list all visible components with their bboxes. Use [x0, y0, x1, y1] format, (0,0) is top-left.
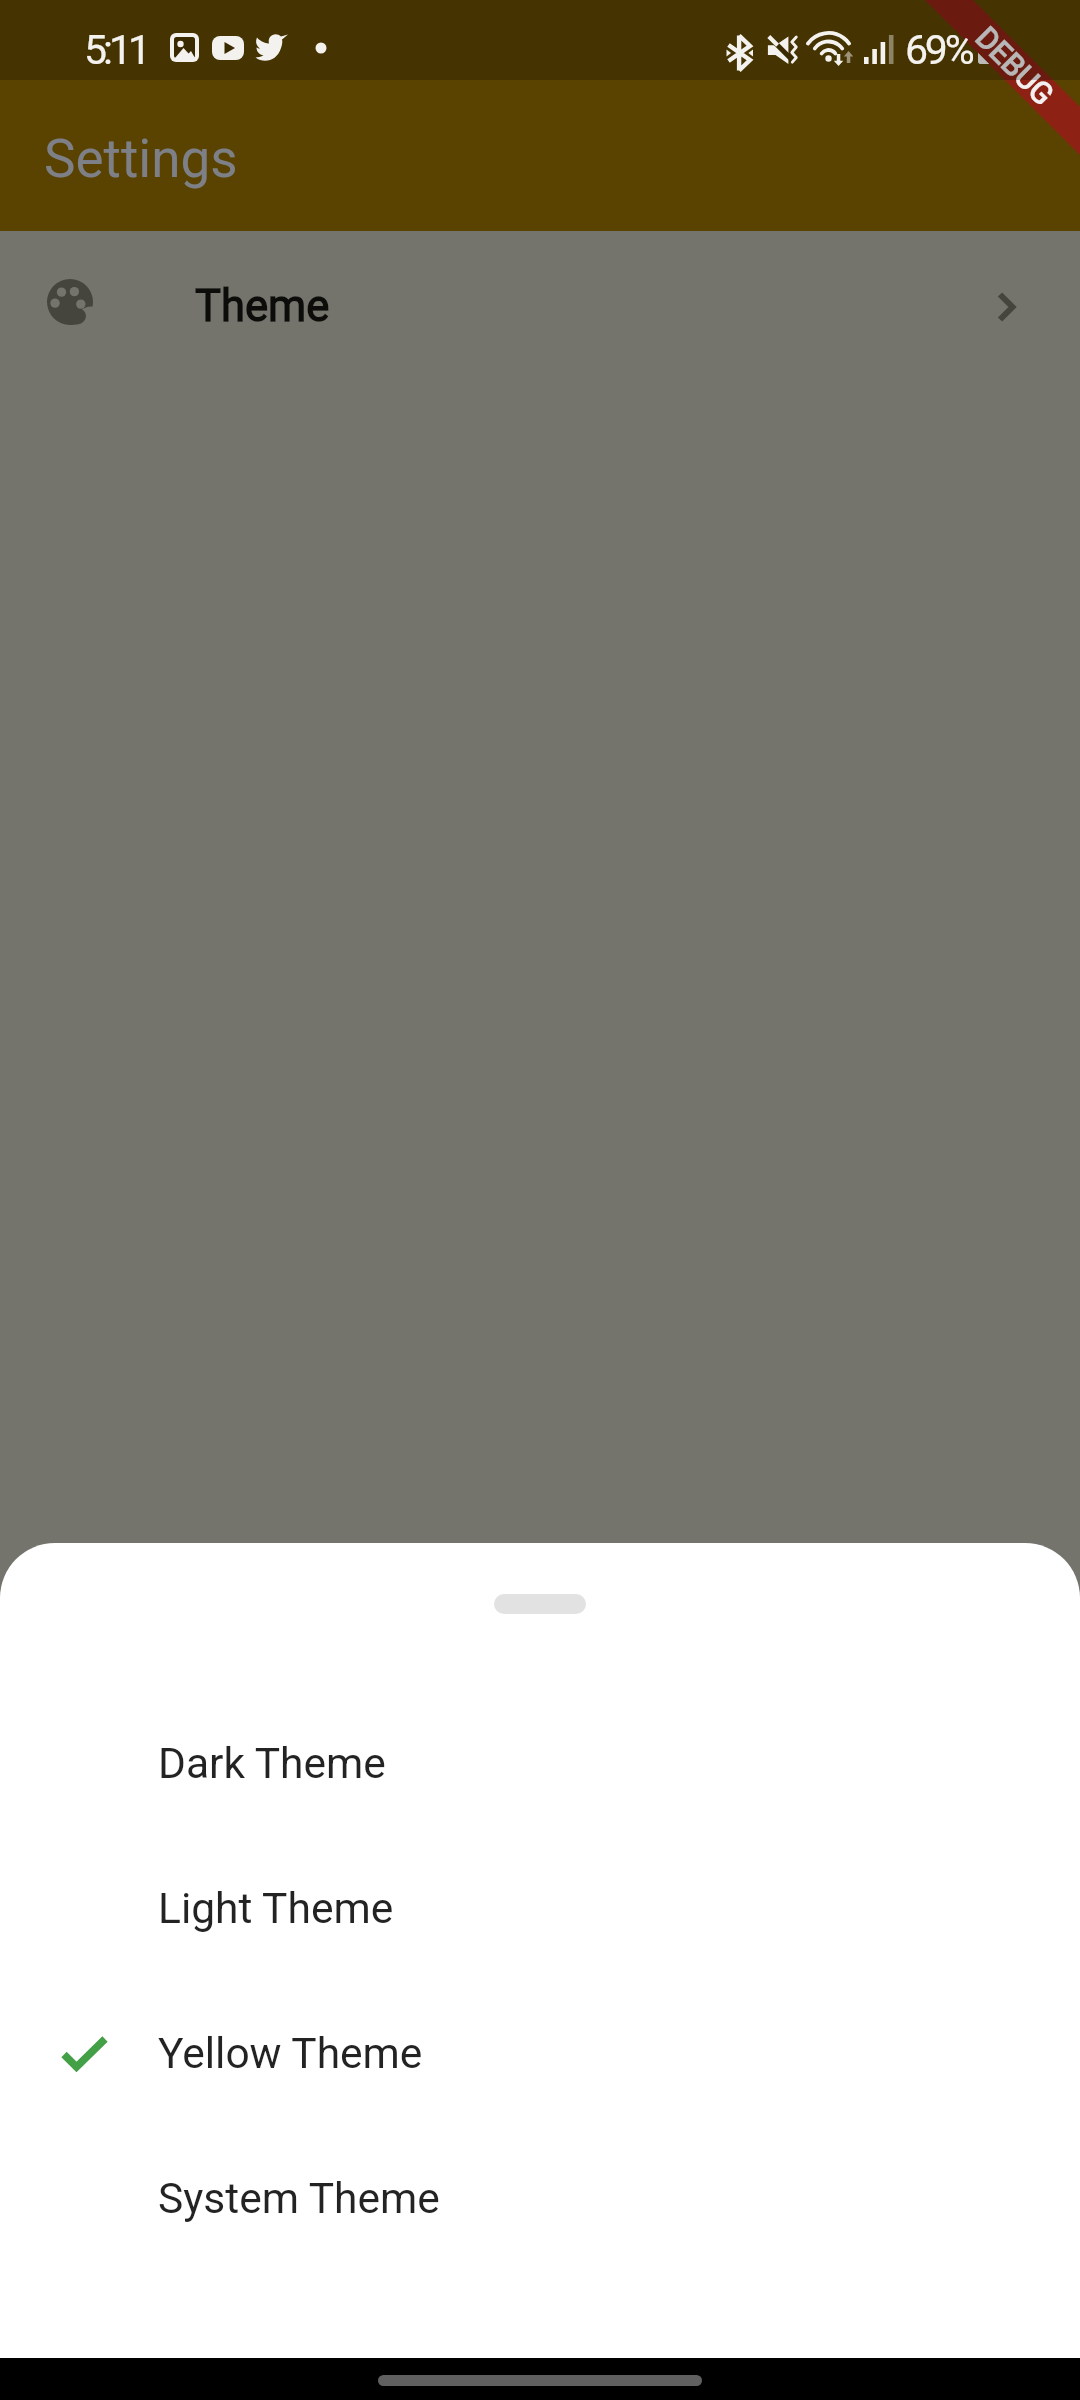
- button[interactable]: System Theme: [0, 2101, 1080, 2246]
- staticText: Dark Theme: [158, 1739, 386, 1789]
- staticText: 69%: [905, 26, 972, 74]
- staticText: 5:11: [84, 26, 148, 74]
- staticText: Yellow Theme: [158, 2029, 423, 2079]
- other: Open theme picker: [984, 285, 1028, 329]
- staticText: Theme: [195, 281, 330, 332]
- button[interactable]: Yellow Theme: [0, 1956, 1080, 2101]
- staticText: System Theme: [158, 2174, 440, 2224]
- button[interactable]: Light Theme: [0, 1811, 1080, 1956]
- button[interactable]: Theme: [0, 231, 1080, 376]
- button[interactable]: Dark Theme: [0, 1666, 1080, 1811]
- staticText: Settings: [44, 128, 238, 190]
- staticText: Light Theme: [158, 1884, 394, 1934]
- other: Theme: [47, 279, 93, 325]
